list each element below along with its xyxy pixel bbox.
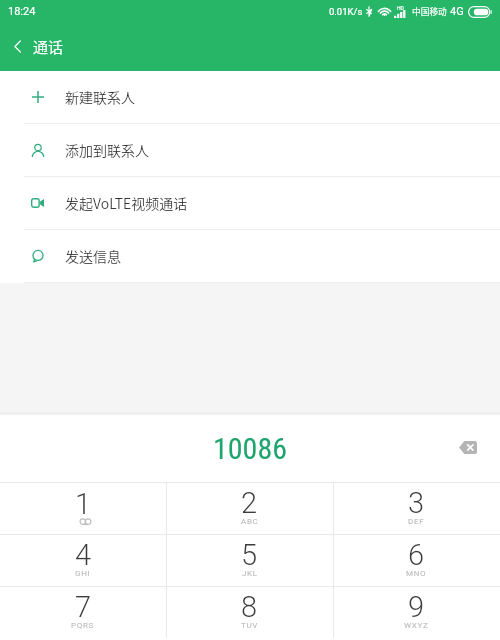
staticText: HD (397, 5, 404, 11)
staticText: 9 (408, 590, 425, 624)
staticText: ABC (241, 517, 259, 526)
staticText: 10086 (213, 431, 288, 466)
staticText: 通话 (33, 36, 64, 58)
button[interactable]: 2 (166, 483, 333, 534)
button[interactable]: 9 (333, 587, 500, 638)
staticText: 1 (75, 487, 92, 521)
button[interactable]: 发起VoLTE视频通话 (0, 177, 500, 229)
button[interactable]: 5 (166, 535, 333, 586)
staticText: 7 (75, 590, 92, 624)
button[interactable]: 4 (0, 535, 166, 586)
staticText: 发起VoLTE视频通话 (65, 193, 188, 213)
button[interactable]: 3 (333, 483, 500, 534)
staticText: 发送信息 (65, 246, 121, 266)
staticText: TUV (241, 621, 259, 630)
button[interactable]: 8 (166, 587, 333, 638)
staticText: GHI (75, 569, 91, 578)
staticText: 新建联系人 (65, 87, 135, 107)
button[interactable]: Back (0, 22, 34, 71)
button[interactable]: 新建联系人 (0, 71, 500, 123)
staticText: 中国移动 (412, 5, 447, 18)
staticText: DEF (408, 517, 425, 526)
staticText: 6 (408, 538, 425, 572)
staticText: WXYZ (404, 621, 429, 630)
staticText: 添加到联系人 (65, 140, 149, 160)
button[interactable]: Backspace (445, 426, 491, 472)
button[interactable]: 添加到联系人 (0, 124, 500, 176)
button[interactable]: 发送信息 (0, 230, 500, 282)
staticText: 18:24 (8, 5, 36, 18)
staticText: 3 (408, 486, 425, 520)
staticText: 8 (241, 590, 258, 624)
staticText: 4 (75, 538, 92, 572)
staticText: 4G (450, 5, 464, 18)
staticText: 2 (241, 486, 258, 520)
staticText: 5 (241, 538, 258, 572)
staticText: 0.01K/s (329, 6, 363, 17)
button[interactable]: 1 (0, 483, 166, 534)
staticText: PQRS (71, 621, 95, 630)
staticText: MNO (406, 569, 427, 578)
button[interactable]: 7 (0, 587, 166, 638)
staticText: JKL (242, 569, 258, 578)
button[interactable]: 6 (333, 535, 500, 586)
